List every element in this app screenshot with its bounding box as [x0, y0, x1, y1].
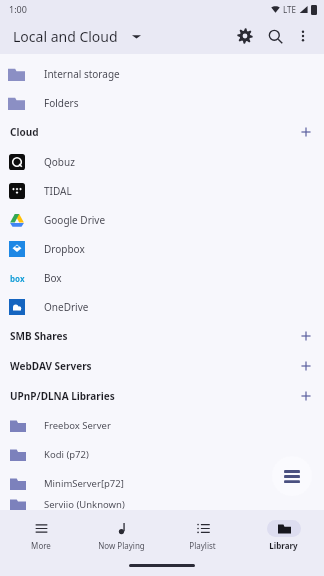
button[interactable]: OneDrive — [0, 292, 324, 321]
staticText: Cloud — [10, 125, 39, 139]
staticText: Dropbox — [44, 242, 85, 256]
button[interactable]: Playlist — [162, 520, 243, 551]
staticText: TIDAL — [44, 184, 72, 198]
staticText: LTE — [283, 4, 296, 15]
button[interactable]: Kodi (p72) — [0, 440, 324, 469]
staticText: Google Drive — [44, 213, 106, 227]
staticText: UPnP/DLNA Libraries — [10, 389, 115, 403]
staticText: MinimServer[p72] — [44, 477, 124, 490]
staticText: WebDAV Servers — [10, 359, 92, 373]
button[interactable]: TIDAL — [0, 176, 324, 205]
staticText: Now Playing — [98, 540, 145, 551]
staticText: More — [31, 540, 51, 551]
button[interactable]: MinimServer[p72] — [0, 469, 324, 498]
button[interactable]: Now Playing — [81, 520, 162, 551]
button[interactable]: More options — [290, 23, 316, 49]
button[interactable]: Add UPnP/DLNA Libraries — [291, 381, 321, 411]
button[interactable]: box — [0, 263, 324, 292]
staticText: Qobuz — [44, 155, 75, 169]
staticText: Internal storage — [44, 67, 120, 81]
staticText: Freebox Server — [44, 419, 111, 432]
button[interactable]: Add Cloud — [291, 117, 321, 147]
button[interactable]: Add WebDAV Servers — [291, 351, 321, 381]
button[interactable]: More — [0, 520, 81, 551]
button[interactable]: Internal storage — [0, 59, 324, 88]
button[interactable]: Freebox Server — [0, 411, 324, 440]
button[interactable]: Add SMB Shares — [291, 321, 321, 351]
staticText: Serviio (Unknown) — [44, 498, 125, 510]
button[interactable]: Library options — [272, 456, 312, 496]
staticText: OneDrive — [44, 300, 89, 314]
button[interactable]: Folders — [0, 88, 324, 117]
staticText: Playlist — [189, 540, 216, 551]
button[interactable]: Serviio (Unknown) — [0, 498, 324, 510]
staticText: Library — [269, 540, 298, 551]
button[interactable]: Local and Cloud — [13, 27, 141, 46]
button[interactable]: Dropbox — [0, 234, 324, 263]
staticText: SMB Shares — [10, 329, 68, 343]
button[interactable]: Qobuz — [0, 147, 324, 176]
button[interactable]: Google Drive — [0, 205, 324, 234]
staticText: box — [10, 273, 25, 284]
staticText: Kodi (p72) — [44, 448, 89, 461]
staticText: Folders — [44, 96, 79, 110]
button[interactable]: Settings — [230, 21, 260, 51]
staticText: Local and Cloud — [13, 27, 118, 46]
staticText: 1:00 — [9, 3, 27, 15]
staticText: Box — [44, 271, 62, 285]
button[interactable]: Search — [260, 21, 290, 51]
button[interactable]: Library — [243, 520, 324, 551]
